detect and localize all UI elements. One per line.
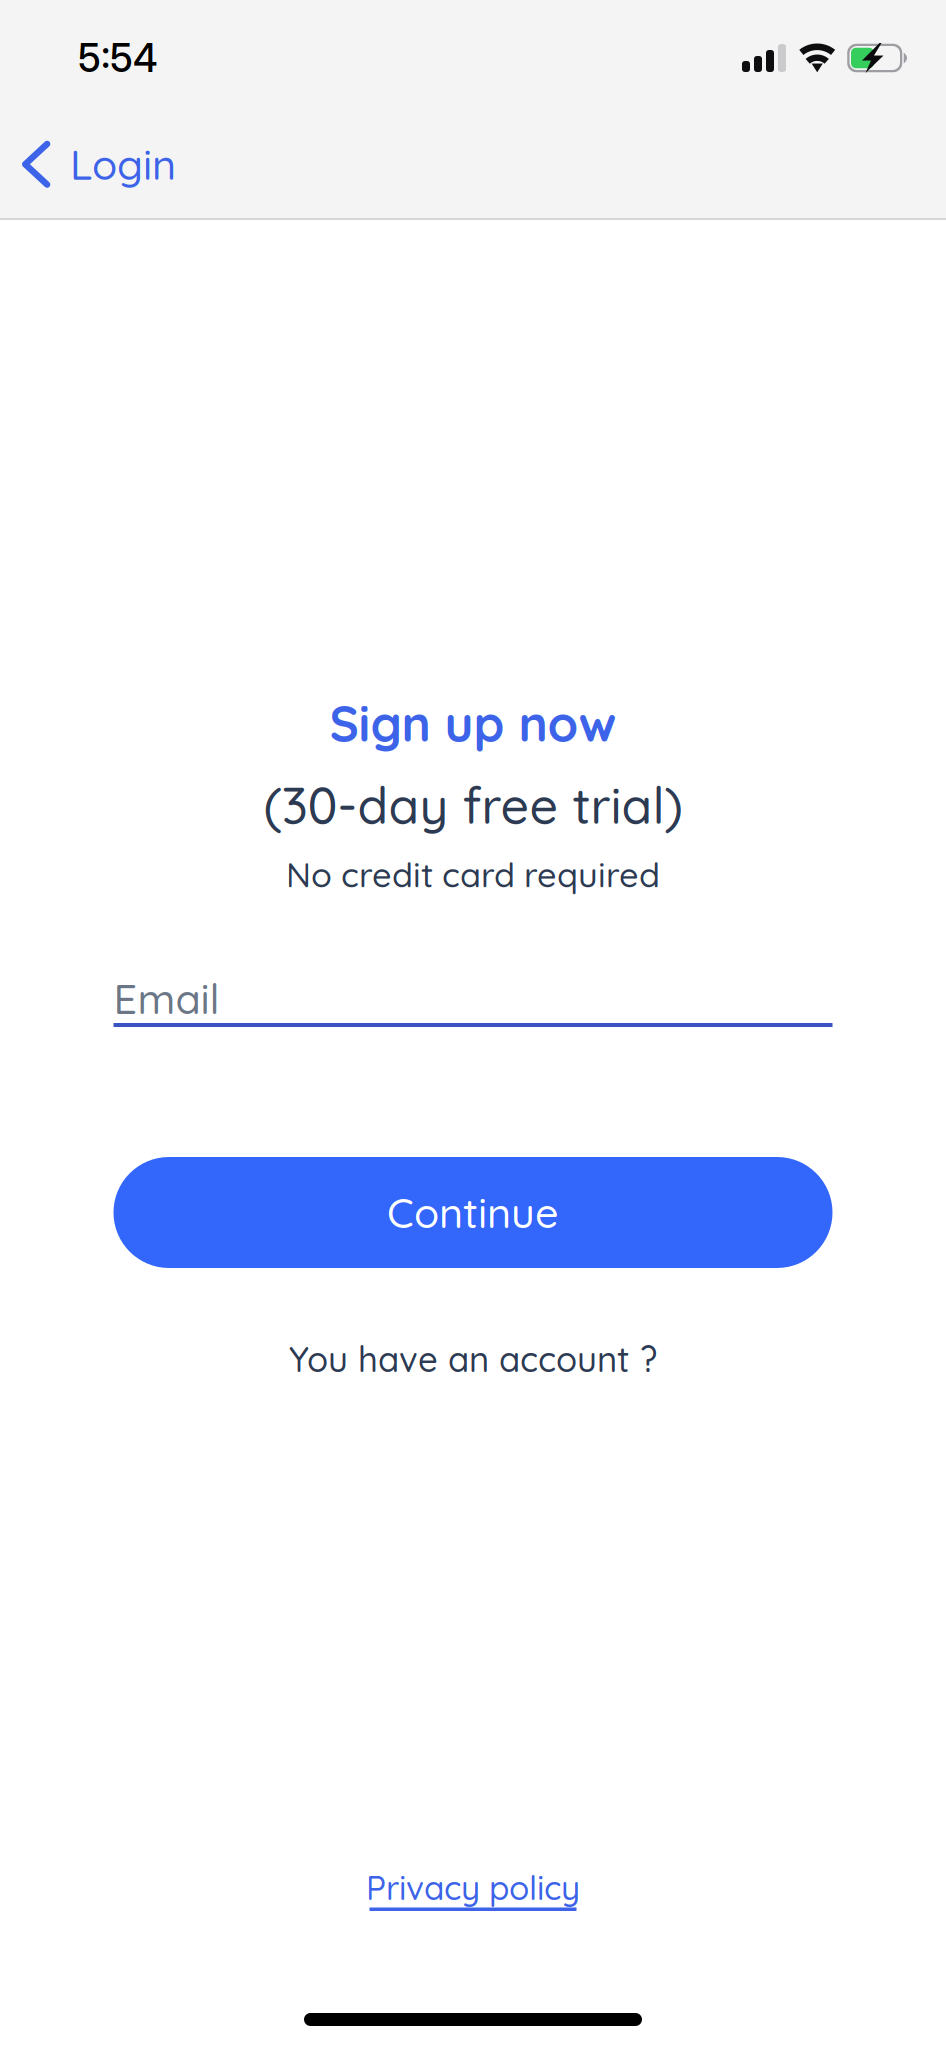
staticText: You have an account ? (289, 1337, 657, 1381)
staticText: Continue (387, 1187, 559, 1238)
staticText: Sign up now (329, 692, 616, 754)
staticText: (30-day free trial) (263, 774, 682, 836)
button[interactable]: Privacy policy (323, 1871, 623, 1911)
button[interactable]: You have an account ? (263, 1342, 683, 1376)
staticText: 5:54 (78, 35, 158, 81)
button[interactable]: Login (0, 110, 200, 218)
button[interactable]: Continue (113, 1157, 832, 1268)
staticText: Login (70, 138, 176, 190)
staticText: Email (113, 973, 219, 1024)
staticText: Privacy policy (366, 1867, 580, 1908)
staticText: No credit card required (286, 853, 660, 896)
